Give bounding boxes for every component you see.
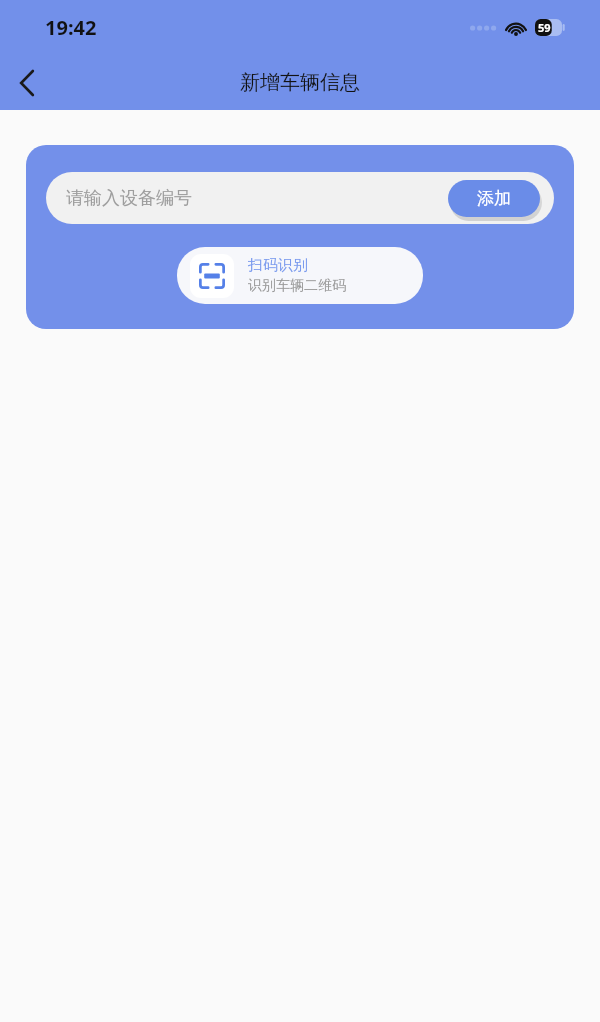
staticText: 添加 bbox=[477, 188, 511, 209]
button[interactable]: 扫码识别 bbox=[177, 247, 423, 304]
button[interactable]: 请输入设备编号 bbox=[66, 187, 192, 210]
staticText: 识别车辆二维码 bbox=[248, 277, 346, 295]
staticText: 扫码识别 bbox=[248, 256, 308, 275]
button[interactable]: 添加 bbox=[448, 180, 540, 217]
button[interactable]: Back bbox=[0, 56, 54, 110]
staticText: 19:42 bbox=[45, 14, 97, 41]
staticText: 59 bbox=[538, 20, 551, 35]
staticText: 新增车辆信息 bbox=[240, 70, 360, 95]
